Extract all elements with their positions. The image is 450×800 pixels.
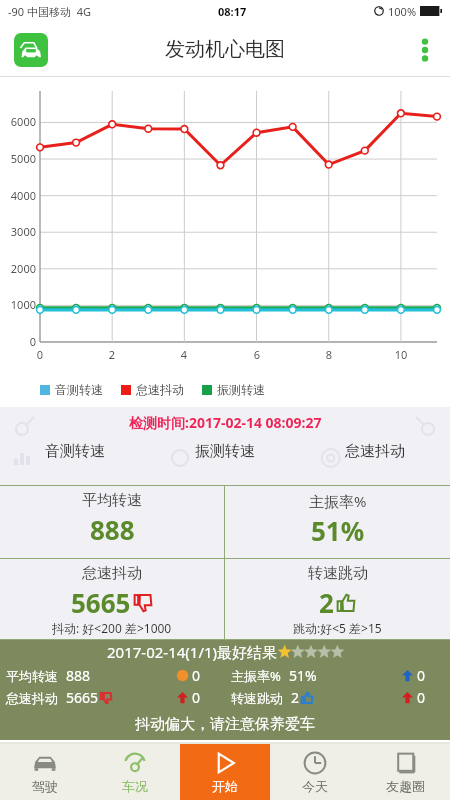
- staticText: 振测转速: [195, 442, 255, 461]
- staticText: 怠速抖动: [82, 564, 142, 583]
- staticText: 0: [417, 688, 426, 707]
- staticText: 2: [102, 347, 122, 362]
- staticText: 友趣圈: [386, 778, 425, 794]
- staticText: 怠速抖动: [345, 442, 405, 461]
- button[interactable]: 友趣圈: [360, 744, 450, 800]
- staticText: 音测转速: [55, 382, 103, 397]
- staticText: 抖动: 好<200 差>1000: [52, 620, 172, 636]
- button[interactable]: 怠速抖动: [300, 437, 450, 465]
- staticText: 平均转速: [82, 491, 142, 510]
- staticText: 1000: [0, 297, 36, 312]
- staticText: 10: [391, 347, 411, 362]
- staticText: 开始: [212, 778, 238, 794]
- staticText: 驾驶: [32, 778, 58, 794]
- staticText: 5665: [71, 585, 131, 620]
- button[interactable]: 今天: [270, 744, 360, 800]
- staticText: 跳动:好<5 差>15: [293, 620, 382, 636]
- staticText: 3000: [0, 224, 36, 239]
- staticText: 转速跳动: [308, 564, 368, 583]
- staticText: 抖动偏大，请注意保养爱车: [135, 715, 315, 734]
- staticText: 2: [319, 585, 334, 620]
- staticText: 5665: [66, 688, 99, 707]
- staticText: 0: [417, 666, 426, 685]
- button[interactable]: 车况: [90, 744, 180, 800]
- staticText: 车况: [122, 778, 148, 794]
- staticText: 0: [192, 666, 201, 685]
- staticText: 0: [0, 334, 36, 349]
- staticText: 0: [30, 347, 50, 362]
- staticText: 4000: [0, 188, 36, 203]
- staticText: 音测转速: [45, 442, 105, 461]
- staticText: 怠速抖动: [6, 690, 58, 706]
- staticText: 检测时间:2017-02-14 08:09:27: [129, 413, 322, 432]
- button[interactable]: App icon: [14, 33, 48, 67]
- staticText: 平均转速: [6, 668, 58, 684]
- staticText: 转速跳动: [231, 690, 283, 706]
- staticText: 今天: [302, 778, 328, 794]
- staticText: 51%: [311, 513, 365, 548]
- staticText: 6000: [0, 114, 36, 129]
- button[interactable]: 音测转速: [0, 437, 150, 465]
- staticText: 4: [174, 347, 194, 362]
- staticText: 振测转速: [217, 382, 265, 397]
- staticText: 100%: [388, 4, 417, 19]
- button[interactable]: 转速跳动: [225, 559, 450, 639]
- staticText: 主振率%: [309, 491, 367, 511]
- staticText: 6: [247, 347, 267, 362]
- staticText: -90 中国移动 4G: [8, 4, 92, 19]
- button[interactable]: 平均转速: [0, 486, 224, 558]
- button[interactable]: 主振率%: [225, 486, 450, 558]
- staticText: 8: [319, 347, 339, 362]
- staticText: 2000: [0, 261, 36, 276]
- button[interactable]: 怠速抖动: [0, 559, 224, 639]
- staticText: 51%: [289, 666, 317, 685]
- staticText: 发动机心电图: [165, 37, 285, 62]
- staticText: 0: [192, 688, 201, 707]
- staticText: 08:17: [218, 4, 247, 19]
- button[interactable]: More options: [414, 30, 436, 70]
- button[interactable]: 驾驶: [0, 744, 90, 800]
- staticText: 888: [66, 666, 91, 685]
- staticText: 怠速抖动: [136, 382, 184, 397]
- button[interactable]: 振测转速: [150, 437, 300, 465]
- staticText: 888: [90, 512, 135, 547]
- staticText: 主振率%: [231, 667, 281, 685]
- staticText: 2017-02-14(1/1)最好结果: [107, 642, 278, 662]
- button[interactable]: 开始: [180, 744, 270, 800]
- staticText: 5000: [0, 151, 36, 166]
- staticText: 2: [291, 688, 300, 707]
